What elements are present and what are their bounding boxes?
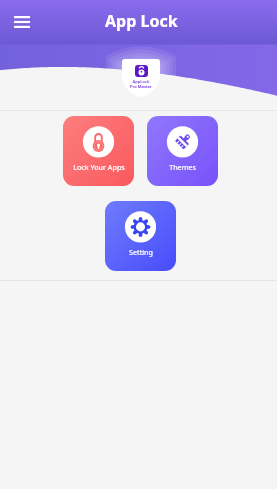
button[interactable]: Open navigation menu: [9, 9, 34, 34]
staticText: App Lock: [105, 10, 178, 32]
staticText: Themes: [169, 162, 196, 172]
staticText: Lock Your Apps: [73, 162, 125, 172]
staticText: Setting: [129, 247, 153, 257]
button[interactable]: Lock Your Apps: [63, 116, 134, 186]
staticText: Pro Master: [130, 84, 152, 89]
button[interactable]: Setting: [105, 201, 176, 271]
button[interactable]: Themes: [147, 116, 218, 186]
staticText: AppLock: [132, 79, 150, 84]
